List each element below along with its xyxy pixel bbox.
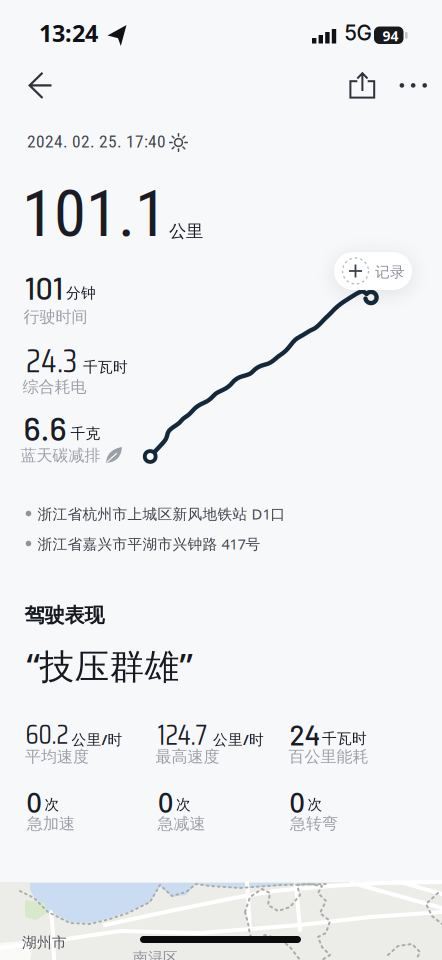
staticText: 5G [344,20,371,45]
staticText: 最高速度 [155,747,219,766]
staticText: 101.1 [22,176,167,252]
staticText: 0 [158,785,173,820]
staticText: 6.6 [23,408,66,447]
staticText: 湖州市 [22,933,67,951]
staticText: 急转弯 [290,814,338,833]
staticText: 2024. 02. 25. 17:40 [27,131,166,152]
staticText: 24.3 [26,334,77,387]
staticText: 千瓦时 [322,729,367,747]
staticText: 急减速 [157,814,205,833]
staticText: 公里/时 [71,729,122,749]
staticText: 分钟 [66,284,96,302]
staticText: 124.7 [157,712,207,757]
staticText: 行驶时间 [23,307,87,327]
staticText: 综合耗电 [22,377,86,397]
staticText: 94 [382,26,398,45]
button[interactable]: 记录 [334,252,412,290]
staticText: 急加速 [27,814,75,833]
staticText: 驾驶表现 [24,603,104,628]
staticText: 千瓦时 [83,358,128,376]
staticText: 公里 [169,220,203,242]
staticText: 浙江省嘉兴市平湖市兴钟路 417号 [37,534,260,553]
staticText: 0 [289,785,304,820]
button[interactable]: Back [13,63,61,107]
staticText: 次 [307,795,322,813]
staticText: 24 [289,717,320,751]
staticText: 101 [24,269,63,306]
staticText: 0 [26,785,41,820]
staticText: 公里/时 [213,729,264,749]
staticText: 次 [44,795,59,813]
staticText: 60.2 [25,713,68,756]
staticText: 百公里能耗 [288,747,368,766]
staticText: 次 [176,795,191,813]
staticText: 蓝天碳减排 [20,445,100,465]
staticText: 平均速度 [25,747,89,766]
staticText: 浙江省杭州市上城区新风地铁站 D1口 [37,504,285,523]
staticText: 13:24 [39,17,98,49]
staticText: 南浔区 [133,948,178,960]
button[interactable]: Share [340,63,384,107]
button[interactable]: More [392,64,436,108]
staticText: “技压群雄” [26,642,192,688]
staticText: 千克 [70,424,100,442]
staticText: 记录 [375,263,405,281]
